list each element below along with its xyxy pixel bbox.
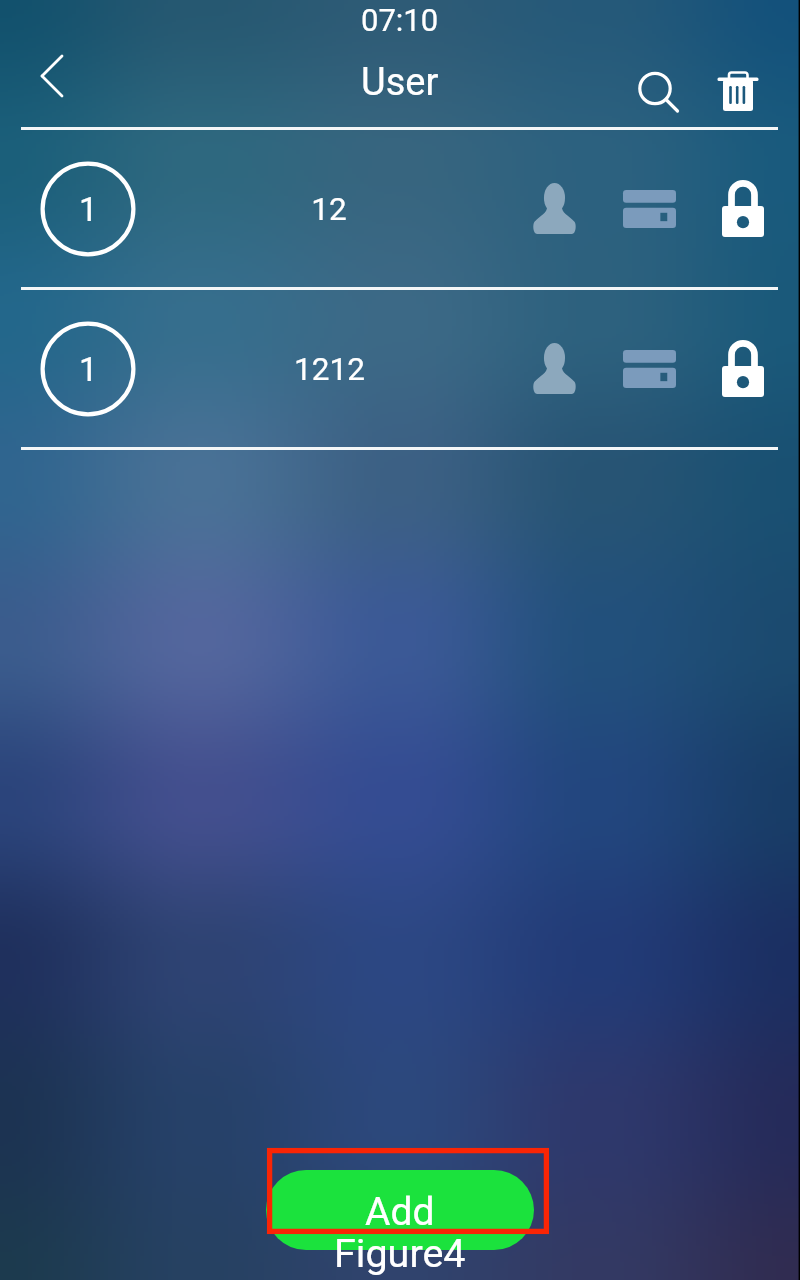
staticText: 1	[79, 190, 98, 229]
button[interactable]: Search	[625, 58, 687, 120]
staticText: 1	[79, 350, 98, 389]
button[interactable]: 1	[0, 290, 800, 447]
button[interactable]: 1	[0, 130, 800, 287]
staticText: 07:10	[361, 2, 439, 38]
staticText: User	[361, 60, 439, 105]
staticText: Add	[365, 1189, 435, 1235]
staticText: 12	[311, 191, 347, 228]
button[interactable]: Back	[17, 51, 67, 101]
button[interactable]: Add	[266, 1170, 534, 1250]
staticText: Figure4	[334, 1230, 466, 1276]
staticText: 1212	[294, 351, 365, 388]
button[interactable]: Delete	[708, 64, 770, 126]
